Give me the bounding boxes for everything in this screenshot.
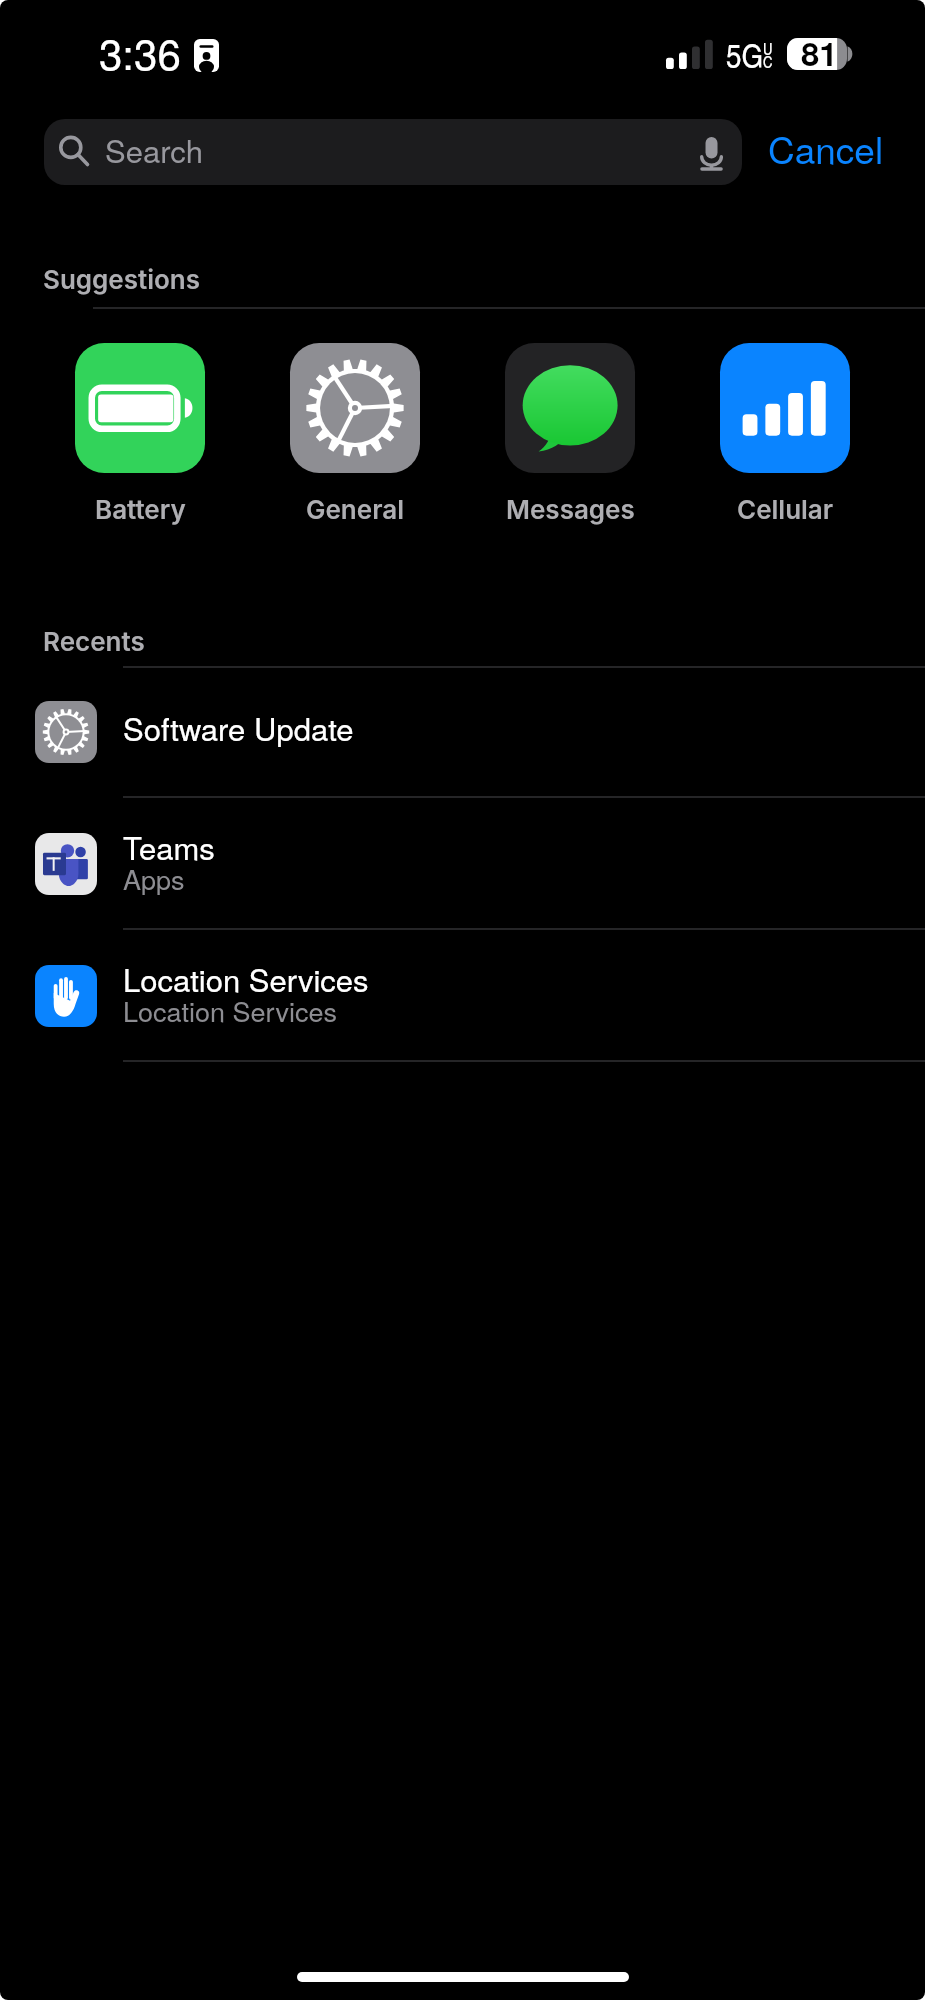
staticText: Location Services [123,991,337,1030]
button[interactable]: Software Update [0,666,925,798]
button[interactable]: Search [44,119,742,185]
staticText: Battery [95,494,186,525]
button[interactable]: Messages [505,343,635,525]
button[interactable]: Location Services [0,930,925,1062]
staticText: Software Update [123,705,354,749]
staticText: Suggestions [43,264,201,295]
staticText: U [763,38,773,60]
staticText: C [763,51,773,73]
staticText: Cellular [737,494,834,525]
staticText: Recents [43,626,145,657]
staticText: Search [105,127,204,171]
staticText: 3:36 [99,22,181,82]
staticText: Cancel [768,122,884,175]
staticText: 81 [801,29,838,76]
staticText: Teams [123,824,215,868]
button[interactable]: Teams [0,798,925,930]
staticText: Location Services [123,956,369,1000]
staticText: Messages [506,494,635,525]
button[interactable]: Voice search [687,129,737,179]
staticText: General [306,494,404,525]
button[interactable]: Battery [75,343,205,525]
button[interactable]: Cellular [720,343,850,525]
staticText: 5G [726,31,764,78]
button[interactable]: General [290,343,420,525]
button[interactable]: Cancel [756,115,896,181]
staticText: Apps [123,859,185,898]
